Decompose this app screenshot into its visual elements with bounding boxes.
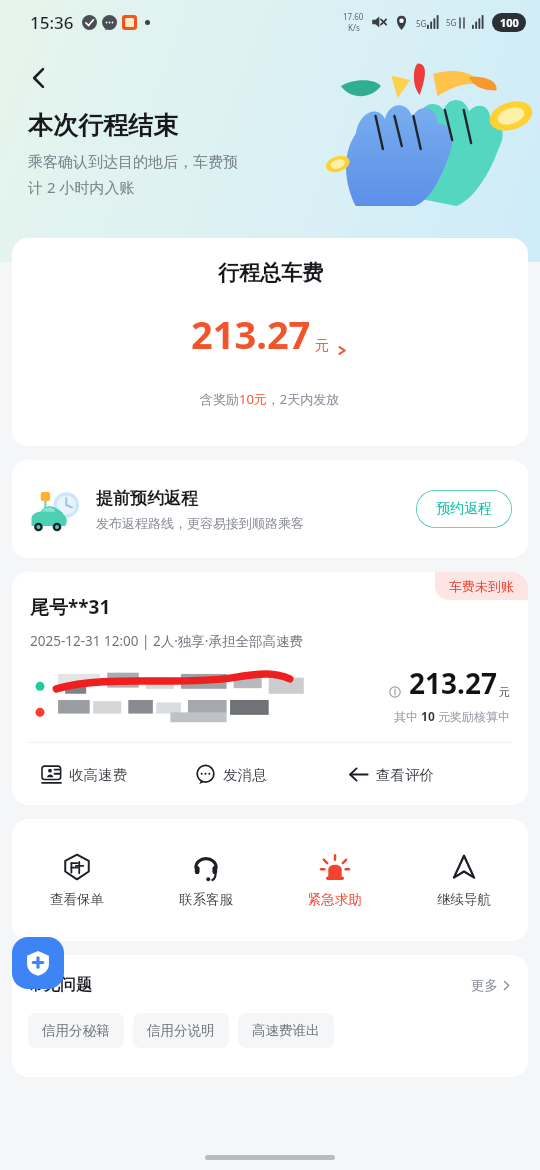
staticText: 信用分秘籍 [42,1022,110,1039]
button[interactable]: 查看保单 [12,819,141,941]
staticText: 行程总车费 [218,260,323,286]
staticText: 213.27 [191,308,311,360]
staticText: 高速费谁出 [252,1022,320,1039]
staticText: 常见问题 [28,975,92,995]
staticText: 信用分说明 [147,1022,215,1039]
staticText: 100 [500,15,519,30]
staticText: 继续导航 [437,891,491,908]
staticText: 紧急求助 [308,891,362,908]
staticText: 发布返程路线，更容易接到顺路乘客 [96,515,304,531]
button[interactable]: 安全中心 [12,937,64,989]
staticText: 车费未到账 [449,578,514,594]
staticText: 其中 10 元奖励核算中 [394,708,510,724]
button[interactable]: 提前预约返程 [12,460,528,558]
staticText: 15:36 [30,11,74,34]
staticText: 尾号**31 [30,594,111,620]
staticText: 213.27 [409,664,497,702]
button[interactable]: 行程总车费 [12,238,528,446]
staticText: 元 [315,337,329,355]
staticText: 收高速费 [69,766,127,784]
button[interactable]: 继续导航 [399,819,528,941]
staticText: 提前预约返程 [96,488,198,509]
button[interactable]: 信用分秘籍 [28,1013,124,1048]
button[interactable]: 发消息 [196,765,349,784]
button[interactable]: 预约返程 [416,490,512,528]
button[interactable]: 信用分说明 [133,1013,229,1048]
staticText: 本次行程结束 [28,110,178,141]
button[interactable]: 紧急求助 [270,819,399,941]
staticText: 元 [499,685,510,699]
button[interactable]: 收高速费 [42,765,196,784]
staticText: 发消息 [223,766,267,784]
staticText: K/s [348,22,360,33]
staticText: 联系客服 [179,891,233,908]
staticText: 查看保单 [50,891,104,908]
button[interactable]: 高速费谁出 [238,1013,334,1048]
button[interactable]: 返回 [28,58,68,98]
staticText: 5G [446,17,457,28]
staticText: 含奖励10元，2天内发放 [200,390,340,408]
staticText: 17.60 [343,11,364,22]
staticText: 预约返程 [436,500,492,518]
button[interactable]: 查看评价 [349,765,502,784]
staticText: 2025-12-31 12:00 | 2人·独享·承担全部高速费 [30,632,303,650]
button[interactable]: 联系客服 [141,819,270,941]
button[interactable]: 尾号**31 [30,594,510,726]
staticText: 更多 [471,977,498,994]
button[interactable]: 更多 [471,977,512,994]
staticText: 查看评价 [376,766,434,784]
staticText: 5G [416,18,427,29]
staticText: 乘客确认到达目的地后，车费预 计 2 小时内入账 [28,153,238,197]
